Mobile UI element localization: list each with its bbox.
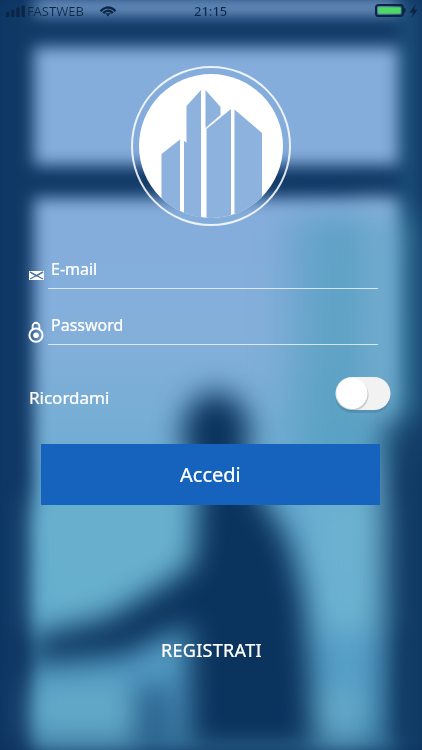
button[interactable]: REGISTRATI	[141, 630, 281, 670]
other: Password	[29, 322, 43, 342]
staticText: FASTWEB	[27, 2, 84, 20]
staticText: Password	[51, 314, 124, 336]
other: Email	[29, 271, 44, 280]
button[interactable]: Accedi	[41, 444, 380, 505]
staticText: E-mail	[51, 258, 98, 280]
staticText: Ricordami	[29, 386, 110, 409]
button[interactable]: Ricordami	[334, 375, 392, 412]
button[interactable]: Password	[24, 318, 388, 368]
staticText: Accedi	[180, 461, 241, 488]
staticText: REGISTRATI	[161, 638, 262, 663]
staticText: 21:15	[194, 2, 228, 20]
button[interactable]: Email	[24, 262, 388, 312]
